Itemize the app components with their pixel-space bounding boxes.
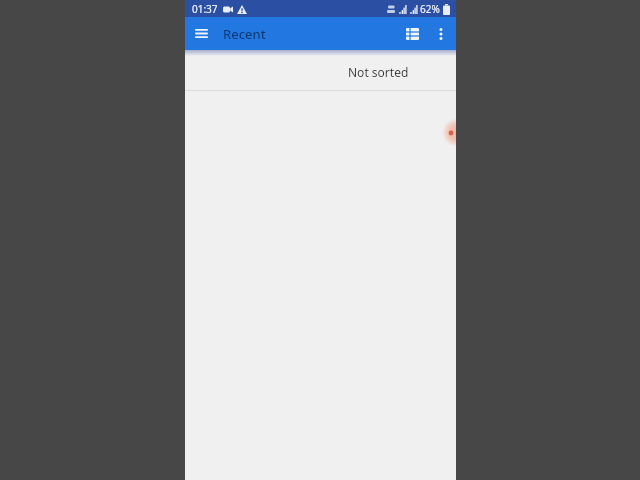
button[interactable]: Recent <box>223 25 266 43</box>
button[interactable] <box>400 22 424 46</box>
button[interactable] <box>432 22 450 46</box>
staticText: 01:37 <box>192 2 218 16</box>
button[interactable]: Not sorted <box>348 64 409 80</box>
staticText: 62% <box>420 2 440 16</box>
button[interactable] <box>185 17 218 50</box>
